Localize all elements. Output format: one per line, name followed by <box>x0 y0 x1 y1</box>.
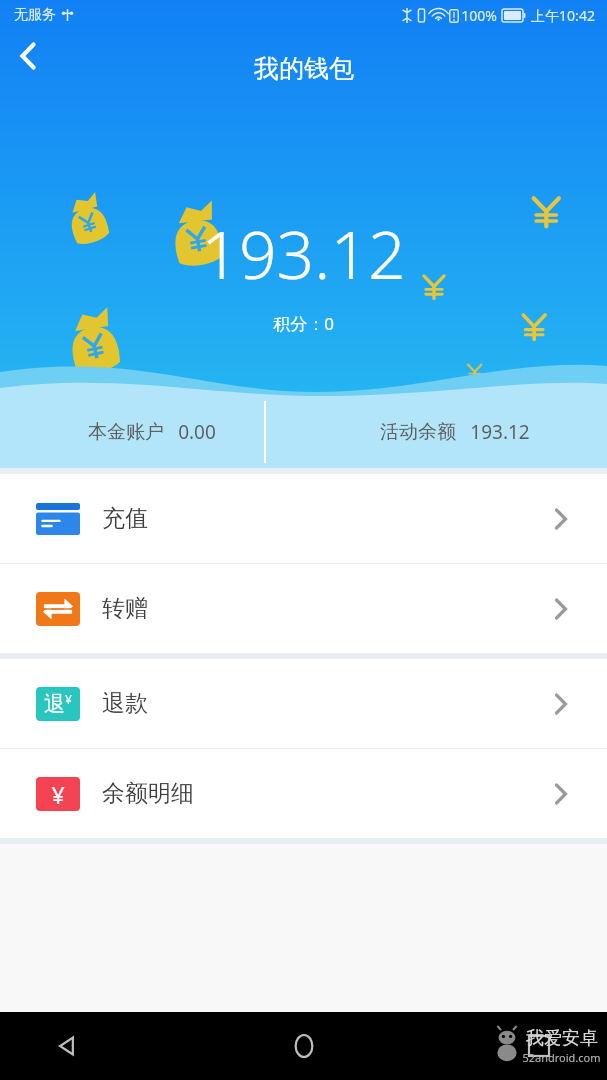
staticText: ¥ <box>65 691 72 707</box>
button[interactable]: 转赠 <box>0 564 607 653</box>
staticText: 活动余额 <box>380 420 456 444</box>
staticText: 积分：0 <box>273 312 334 335</box>
button[interactable]: Recent apps <box>511 1018 567 1074</box>
staticText: 充值 <box>102 504 148 533</box>
button[interactable]: Home <box>276 1018 332 1074</box>
button[interactable]: 活动余额 <box>303 396 607 468</box>
staticText: 本金账户 <box>88 420 164 444</box>
staticText: 我的钱包 <box>254 53 354 84</box>
staticText: 52android.com <box>522 1050 601 1065</box>
staticText: 上午10:42 <box>531 6 595 25</box>
staticText: 我爱安卓 <box>526 1027 598 1050</box>
staticText: 193.12 <box>201 208 406 298</box>
staticText: 余额明细 <box>102 779 194 808</box>
staticText: 100% <box>461 6 497 25</box>
staticText: 退 <box>44 691 65 717</box>
staticText: 无服务 <box>14 6 56 24</box>
staticText: ¥ <box>51 779 65 810</box>
staticText: 转赠 <box>102 594 148 623</box>
button[interactable]: Back <box>0 28 56 84</box>
button[interactable]: Back <box>40 1018 96 1074</box>
button[interactable]: ¥ <box>0 749 607 838</box>
staticText: 退款 <box>102 689 148 718</box>
staticText: 193.12 <box>470 419 530 445</box>
button[interactable]: 充值 <box>0 474 607 563</box>
staticText: 0.00 <box>178 419 216 445</box>
button[interactable]: 退 <box>0 659 607 748</box>
button[interactable]: 本金账户 <box>0 396 303 468</box>
